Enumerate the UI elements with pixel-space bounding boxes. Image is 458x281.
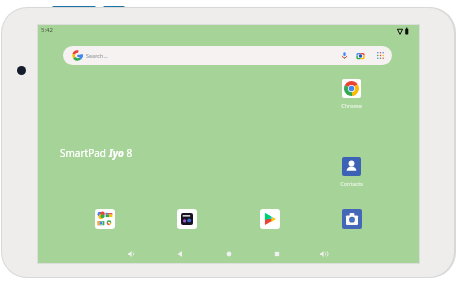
staticText: 5:42: [41, 26, 53, 34]
button[interactable]: Contacts: [323, 157, 379, 187]
staticText: Contacts: [340, 180, 363, 187]
button[interactable]: Recents: [269, 246, 285, 262]
button[interactable]: Google folder: [95, 209, 115, 229]
staticText: 8: [124, 146, 133, 160]
staticText: Chrome: [341, 102, 362, 109]
button[interactable]: Volume up: [316, 246, 332, 262]
button[interactable]: Volume down: [124, 246, 140, 262]
button[interactable]: Search...: [63, 46, 392, 65]
button[interactable]: Chrome: [323, 79, 379, 109]
button[interactable]: Home: [221, 246, 237, 262]
button[interactable]: Play Store: [260, 209, 280, 229]
staticText: Iyo: [109, 146, 124, 160]
staticText: Search...: [86, 52, 108, 59]
button[interactable]: Camera: [342, 209, 362, 229]
button[interactable]: Media player: [177, 209, 197, 229]
button[interactable]: Back: [172, 246, 188, 262]
staticText: SmartPad: [60, 146, 109, 160]
